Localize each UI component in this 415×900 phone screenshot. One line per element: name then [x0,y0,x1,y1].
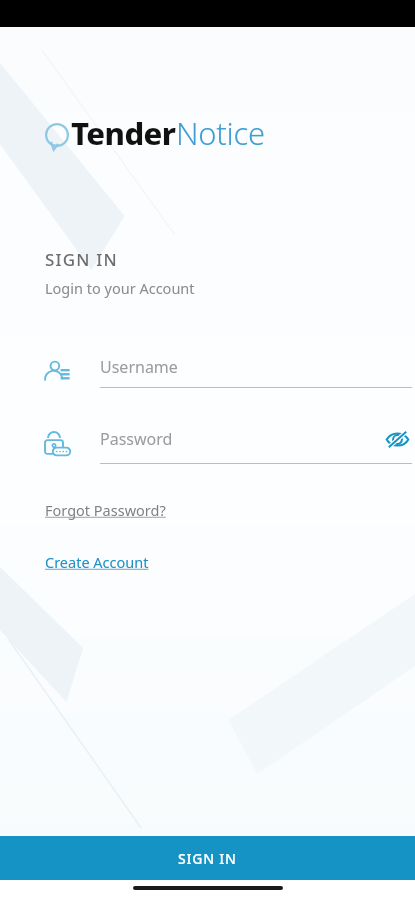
button[interactable]: Create Account [45,552,149,572]
staticText: SIGN IN [45,248,118,271]
staticText: Create Account [45,552,149,572]
button[interactable]: Password [42,424,412,464]
staticText: Login to your Account [45,278,195,298]
button[interactable]: Username [42,356,412,388]
staticText: Notice [176,112,265,154]
staticText: Password [100,428,382,450]
button[interactable]: SIGN IN [0,836,415,880]
button[interactable]: Show password [382,424,412,454]
staticText: Forgot Password? [45,500,166,520]
button[interactable]: Forgot Password? [45,500,166,520]
staticText: Tender [71,112,176,154]
staticText: Username [100,356,178,378]
staticText: SIGN IN [178,849,237,868]
